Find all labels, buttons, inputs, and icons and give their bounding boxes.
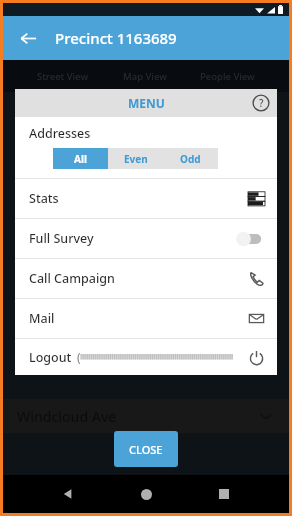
button[interactable]: Logout — [15, 339, 277, 375]
staticText: Precinct 1163689 — [55, 28, 177, 48]
button[interactable]: All — [53, 148, 108, 169]
button[interactable]: People View — [200, 70, 255, 83]
staticText: Odd — [180, 152, 201, 166]
staticText: People View — [200, 70, 255, 83]
button[interactable]: Stats — [15, 179, 277, 218]
button[interactable]: Back — [11, 21, 45, 55]
staticText: All — [74, 152, 87, 166]
button[interactable]: Map View — [123, 70, 167, 83]
button[interactable]: Call Campaign — [15, 259, 277, 298]
staticText: Street View — [37, 70, 89, 83]
button[interactable]: CLOSE — [114, 431, 178, 467]
button[interactable]: Help — [252, 94, 270, 112]
staticText: Windcloud Ave — [17, 407, 117, 426]
button[interactable]: Street View — [37, 70, 89, 83]
button[interactable]: Back — [55, 481, 81, 507]
button[interactable]: Odd — [163, 148, 218, 169]
button[interactable]: Home — [133, 481, 159, 507]
button[interactable]: Full Survey — [15, 219, 277, 258]
staticText: Even — [124, 152, 148, 166]
staticText: Full Survey — [29, 230, 94, 247]
staticText: Call Campaign — [29, 270, 115, 287]
staticText: ? — [259, 96, 264, 110]
staticText: Map View — [123, 70, 167, 83]
button[interactable]: Recent apps — [211, 481, 237, 507]
staticText: Stats — [29, 190, 59, 207]
staticText: Mail — [29, 310, 55, 327]
staticText: Addresses — [29, 125, 91, 142]
staticText: ( — [77, 349, 81, 365]
staticText: CLOSE — [129, 442, 163, 457]
button[interactable]: Mail — [15, 299, 277, 338]
button[interactable]: Even — [108, 148, 163, 169]
staticText: MENU — [128, 95, 165, 111]
staticText: Logout — [29, 349, 72, 366]
button[interactable]: Windcloud Ave — [17, 399, 275, 433]
